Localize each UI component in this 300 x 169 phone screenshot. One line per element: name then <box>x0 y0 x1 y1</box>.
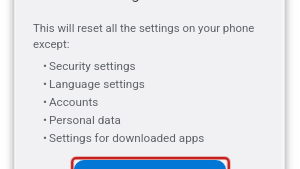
staticText: Accounts <box>49 95 99 109</box>
staticText: Personal data <box>49 113 121 127</box>
staticText: Settings for downloaded apps <box>49 131 205 145</box>
staticText: • <box>43 113 47 127</box>
staticText: Security settings <box>49 59 136 73</box>
staticText: • <box>43 59 47 73</box>
staticText: This will reset all the settings on your… <box>33 21 267 51</box>
staticText: • <box>43 131 47 145</box>
staticText: • <box>43 77 47 91</box>
button[interactable]: Reset all settings <box>71 156 230 169</box>
staticText: Language settings <box>49 77 145 91</box>
staticText: • <box>43 95 47 109</box>
staticText: Reset all settings? <box>33 0 155 3</box>
